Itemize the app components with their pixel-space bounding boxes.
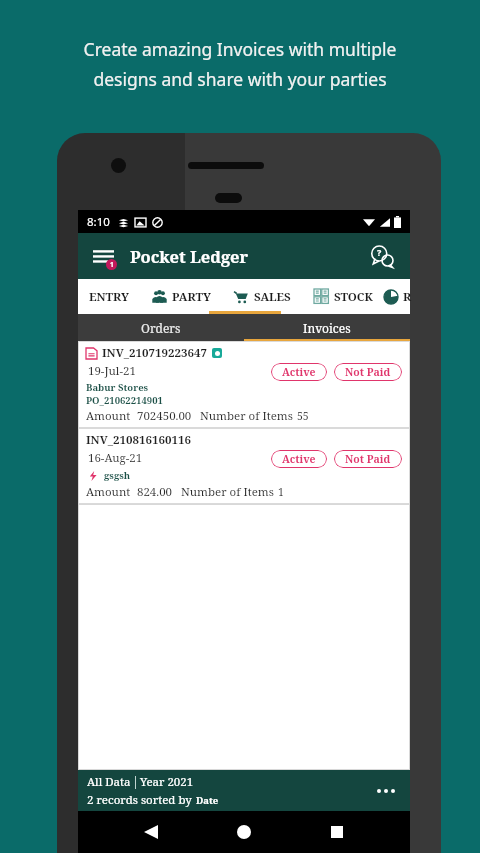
- staticText: Amount: [86, 484, 131, 500]
- staticText: designs and share with your parties: [16, 67, 464, 91]
- button[interactable]: Active: [271, 363, 327, 381]
- staticText: Invoices: [303, 320, 351, 336]
- staticText: PARTY: [172, 289, 211, 305]
- button[interactable]: Invoices: [244, 314, 410, 341]
- button[interactable]: Recent apps: [317, 812, 357, 852]
- staticText: Number of Items: [200, 408, 293, 424]
- staticText: Year 2021: [140, 774, 194, 790]
- button[interactable]: Home: [224, 812, 264, 852]
- staticText: 1: [110, 260, 114, 269]
- staticText: R: [403, 289, 410, 305]
- staticText: Orders: [141, 320, 181, 336]
- button[interactable]: More options: [370, 775, 402, 807]
- staticText: Number of Items: [181, 484, 274, 500]
- staticText: Babur Stores: [86, 381, 149, 394]
- staticText: Pocket Ledger: [130, 245, 249, 267]
- staticText: 1: [278, 485, 284, 499]
- staticText: Create amazing Invoices with multiple: [16, 37, 464, 61]
- staticText: 16-Aug-21: [88, 450, 143, 466]
- button[interactable]: Open navigation menu: [86, 239, 120, 273]
- staticText: Not Paid: [345, 365, 391, 379]
- staticText: ?: [377, 246, 382, 258]
- staticText: 19-Jul-21: [88, 363, 136, 379]
- staticText: Active: [282, 365, 316, 379]
- button[interactable]: Not Paid: [334, 363, 402, 381]
- staticText: All Data: [87, 774, 131, 790]
- staticText: PO_21062214901: [86, 394, 163, 407]
- button[interactable]: INV_210816160116: [78, 428, 410, 504]
- staticText: 824.00: [137, 484, 173, 500]
- staticText: Not Paid: [345, 452, 391, 466]
- staticText: INV_210719223647: [102, 345, 207, 361]
- staticText: SALES: [254, 289, 291, 305]
- staticText: ENTRY: [89, 289, 129, 305]
- staticText: STOCK: [334, 289, 373, 305]
- staticText: INV_210816160116: [86, 432, 191, 448]
- staticText: 55: [297, 409, 309, 423]
- staticText: 2 records sorted by: [87, 792, 192, 808]
- staticText: Active: [282, 452, 316, 466]
- button[interactable]: Not Paid: [334, 450, 402, 468]
- button[interactable]: Help: [364, 238, 400, 274]
- button[interactable]: STOCK: [302, 279, 384, 314]
- button[interactable]: Back: [131, 812, 171, 852]
- button[interactable]: PARTY: [140, 279, 222, 314]
- button[interactable]: R: [384, 279, 410, 314]
- staticText: 8:10: [87, 214, 110, 230]
- button[interactable]: Orders: [78, 314, 244, 341]
- staticText: 702450.00: [137, 408, 192, 424]
- staticText: gsgsh: [104, 469, 131, 482]
- staticText: Amount: [86, 408, 131, 424]
- button[interactable]: SALES: [222, 279, 302, 314]
- staticText: Date: [196, 794, 219, 807]
- button[interactable]: ENTRY: [78, 279, 140, 314]
- button[interactable]: INV_210719223647: [78, 341, 410, 428]
- button[interactable]: Active: [271, 450, 327, 468]
